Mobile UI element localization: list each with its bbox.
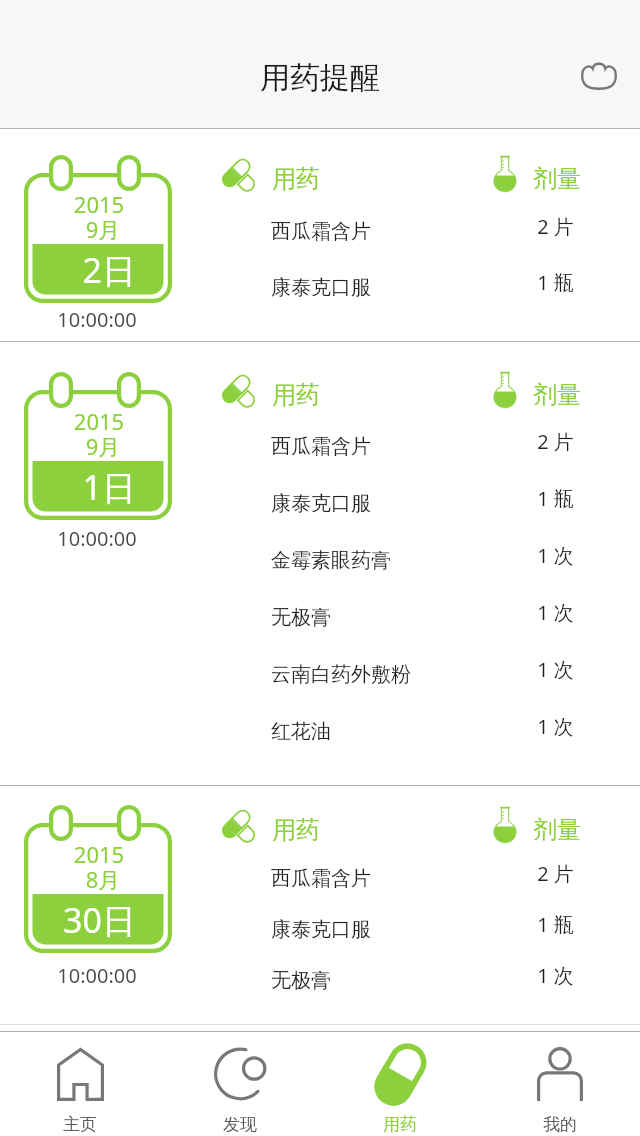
staticText: 2 片 (495, 213, 616, 240)
staticText: 1 次 (495, 656, 616, 683)
staticText: 剂量 (533, 815, 581, 845)
staticText: 金霉素眼药膏 (271, 548, 391, 573)
staticText: 用药 (383, 1114, 417, 1135)
staticText: 2015 (25, 839, 173, 869)
button[interactable]: 用药 (320, 1032, 480, 1136)
staticText: 10:00:00 (27, 306, 167, 333)
staticText: 无极膏 (271, 605, 331, 630)
staticText: 2日 (24, 247, 136, 293)
staticText: 1 瓶 (495, 485, 616, 512)
staticText: 用药提醒 (260, 59, 380, 97)
staticText: 2 片 (495, 428, 616, 455)
button[interactable]: 发现 (160, 1032, 320, 1136)
staticText: 用药 (272, 815, 320, 845)
button[interactable]: 主页 (0, 1032, 160, 1136)
staticText: 1日 (24, 464, 136, 510)
button[interactable]: 2015 (0, 786, 640, 1023)
staticText: 康泰克口服 (271, 275, 371, 300)
staticText: 2015 (25, 406, 173, 436)
staticText: 主页 (63, 1114, 97, 1135)
staticText: 10:00:00 (27, 525, 167, 552)
button[interactable]: Add reminder (570, 46, 628, 104)
staticText: 2 片 (495, 860, 616, 887)
staticText: 1 瓶 (495, 269, 616, 296)
staticText: 我的 (543, 1114, 577, 1135)
staticText: 2015 (25, 189, 173, 219)
staticText: 西瓜霜含片 (271, 219, 371, 244)
staticText: 9月 (29, 431, 177, 461)
button[interactable]: 2015 (0, 129, 640, 341)
staticText: 康泰克口服 (271, 491, 371, 516)
staticText: 1 瓶 (495, 911, 616, 938)
staticText: 1 次 (495, 962, 616, 989)
staticText: 用药 (272, 380, 320, 410)
staticText: 10:00:00 (27, 962, 167, 989)
staticText: 红花油 (271, 719, 331, 744)
staticText: 用药 (272, 164, 320, 194)
staticText: 剂量 (533, 164, 581, 194)
staticText: 云南白药外敷粉 (271, 662, 411, 687)
button[interactable]: 2015 (0, 342, 640, 784)
staticText: 9月 (29, 214, 177, 244)
staticText: 1 次 (495, 599, 616, 626)
staticText: 剂量 (533, 380, 581, 410)
staticText: 1 次 (495, 542, 616, 569)
staticText: 30日 (24, 897, 136, 943)
staticText: 康泰克口服 (271, 917, 371, 942)
button[interactable]: 我的 (480, 1032, 640, 1136)
staticText: 发现 (223, 1114, 257, 1135)
staticText: 8月 (29, 864, 177, 894)
staticText: 1 次 (495, 713, 616, 740)
staticText: 西瓜霜含片 (271, 866, 371, 891)
staticText: 西瓜霜含片 (271, 434, 371, 459)
staticText: 无极膏 (271, 968, 331, 993)
